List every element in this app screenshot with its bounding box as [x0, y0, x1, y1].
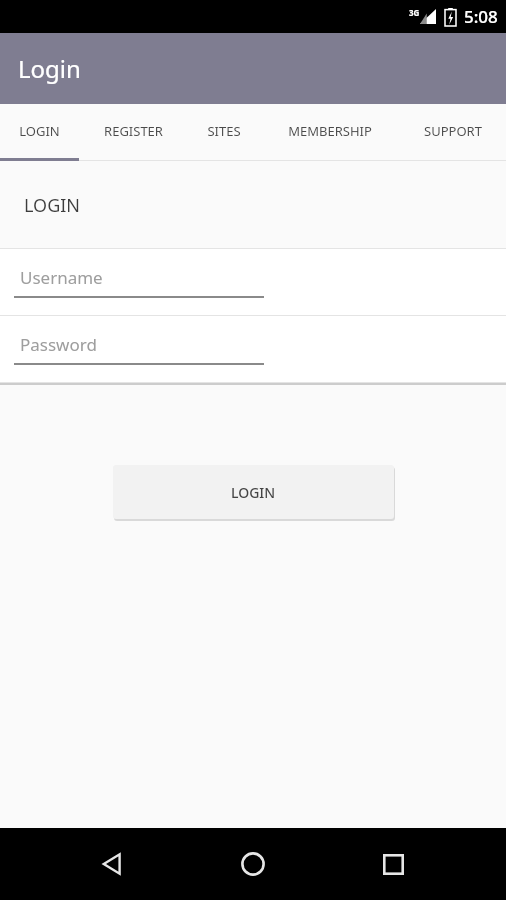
staticText: LOGIN: [231, 483, 276, 502]
button[interactable]: LOGIN: [113, 465, 394, 519]
staticText: SITES: [207, 122, 241, 140]
staticText: REGISTER: [104, 122, 163, 140]
button[interactable]: MEMBERSHIP: [260, 104, 400, 157]
staticText: SUPPORT: [424, 122, 482, 140]
staticText: Username: [20, 266, 103, 289]
staticText: 3G: [409, 7, 420, 18]
staticText: MEMBERSHIP: [288, 122, 372, 140]
button[interactable]: SUPPORT: [400, 104, 506, 157]
button[interactable]: LOGIN: [0, 104, 79, 157]
staticText: Login: [18, 52, 81, 85]
button[interactable]: SITES: [187, 104, 260, 157]
button[interactable]: Back: [93, 844, 133, 884]
button[interactable]: Home: [231, 842, 275, 886]
staticText: LOGIN: [19, 122, 60, 140]
staticText: Password: [20, 333, 97, 356]
button[interactable]: Username: [0, 249, 506, 316]
button[interactable]: REGISTER: [79, 104, 187, 157]
staticText: 5:08: [464, 5, 498, 28]
button[interactable]: Password: [0, 316, 506, 383]
staticText: LOGIN: [24, 193, 81, 218]
button[interactable]: Recent apps: [373, 844, 413, 884]
